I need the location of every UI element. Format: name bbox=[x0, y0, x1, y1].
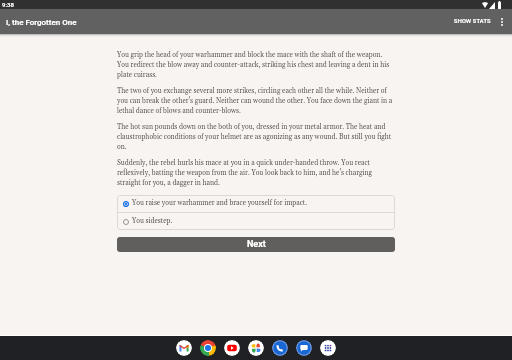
button[interactable]: All apps bbox=[320, 340, 336, 356]
staticText: You raise your warhammer and brace yours… bbox=[132, 199, 308, 208]
button[interactable]: Next bbox=[117, 237, 395, 252]
staticText: Suddenly, the rebel hurls his mace at yo… bbox=[117, 159, 395, 188]
button[interactable]: YouTube bbox=[224, 340, 240, 356]
button[interactable]: You sidestep. bbox=[117, 213, 395, 230]
button[interactable]: Chrome bbox=[200, 340, 216, 356]
staticText: 9:38 bbox=[2, 1, 14, 8]
staticText: You sidestep. bbox=[132, 217, 173, 226]
staticText: I, the Forgotten One bbox=[6, 18, 77, 27]
staticText: The two of you exchange several more str… bbox=[117, 87, 395, 116]
staticText: You grip the head of your warhammer and … bbox=[117, 51, 395, 80]
button[interactable]: Photos bbox=[248, 340, 264, 356]
button[interactable]: Messages bbox=[296, 340, 312, 356]
staticText: The hot sun pounds down on the both of y… bbox=[117, 123, 395, 152]
button[interactable]: SHOW STATS bbox=[450, 13, 495, 30]
button[interactable]: You raise your warhammer and brace yours… bbox=[117, 195, 395, 212]
button[interactable]: More options bbox=[495, 15, 509, 29]
staticText: SHOW STATS bbox=[454, 18, 491, 25]
button[interactable]: Gmail bbox=[176, 340, 192, 356]
button[interactable]: Phone bbox=[272, 340, 288, 356]
staticText: Next bbox=[247, 239, 266, 250]
